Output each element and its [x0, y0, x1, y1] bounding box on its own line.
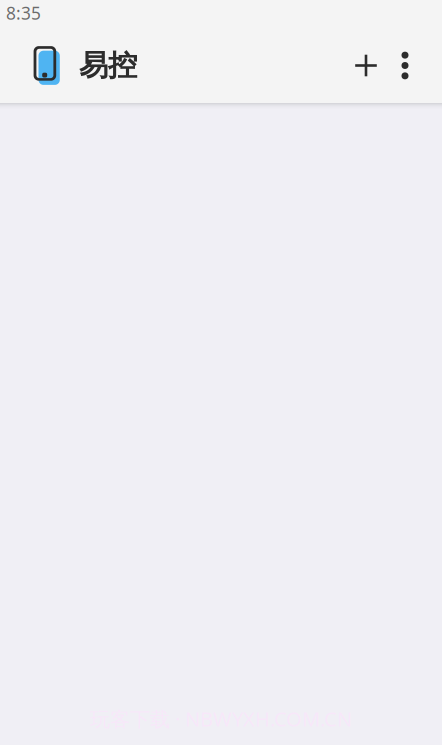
button[interactable]: More options [378, 28, 425, 103]
staticText: 8:35 [6, 1, 41, 24]
button[interactable]: Add [330, 28, 378, 103]
staticText: 易控 [79, 47, 137, 83]
